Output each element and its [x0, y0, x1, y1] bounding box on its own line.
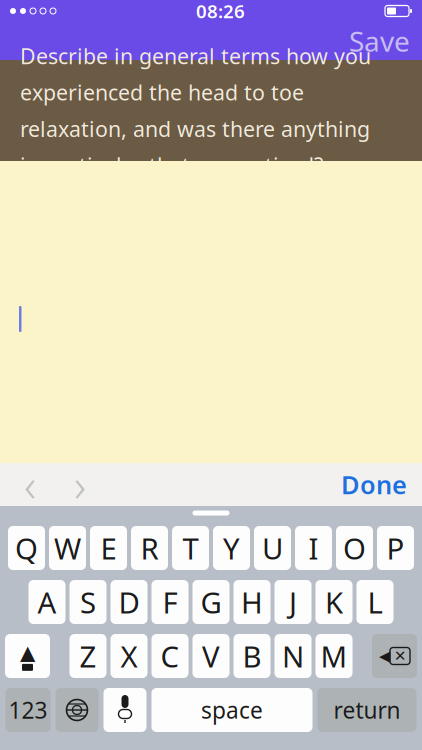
button[interactable]: return	[317, 688, 416, 732]
staticText: R	[140, 528, 158, 567]
button[interactable]: K	[315, 580, 352, 624]
button[interactable]: B	[233, 634, 270, 678]
staticText: Save	[349, 22, 410, 60]
staticText: B	[242, 636, 261, 675]
button[interactable]: M	[315, 634, 352, 678]
button[interactable]: Shift	[5, 634, 50, 678]
button[interactable]: T	[172, 526, 209, 570]
button[interactable]: I	[295, 526, 332, 570]
staticText: J	[289, 582, 297, 621]
staticText: K	[325, 582, 343, 621]
staticText: V	[202, 636, 220, 675]
staticText: G	[200, 582, 221, 621]
button[interactable]: Next keyboard	[55, 688, 98, 732]
button[interactable]: 123	[5, 688, 50, 732]
button[interactable]: L	[356, 580, 393, 624]
staticText: A	[37, 582, 56, 621]
staticText: Z	[79, 636, 96, 675]
button[interactable]: J	[274, 580, 311, 624]
staticText: M	[320, 636, 347, 675]
staticText: Describe in general terms how you experi…	[20, 42, 371, 179]
button[interactable]: Done	[341, 462, 422, 507]
staticText: ▲	[20, 641, 35, 664]
staticText: N	[282, 636, 304, 675]
staticText: ›	[74, 454, 86, 515]
staticText: ‹	[24, 454, 36, 515]
button[interactable]: O	[336, 526, 373, 570]
staticText: ✕	[394, 648, 406, 664]
button[interactable]: F	[151, 580, 188, 624]
staticText: 08:26	[196, 0, 245, 23]
staticText: D	[118, 582, 139, 621]
staticText: 123	[8, 695, 47, 725]
button[interactable]: D	[110, 580, 147, 624]
staticText: C	[160, 636, 179, 675]
button[interactable]: Q	[8, 526, 45, 570]
button[interactable]: Dictate	[103, 688, 146, 732]
button[interactable]: W	[49, 526, 86, 570]
button[interactable]: H	[233, 580, 270, 624]
staticText: ◀	[379, 648, 390, 664]
button[interactable]: Previous field	[8, 464, 52, 504]
staticText: L	[367, 582, 382, 621]
button[interactable]: G	[192, 580, 229, 624]
staticText: X	[120, 636, 137, 675]
staticText: Q	[15, 528, 38, 567]
button[interactable]: Save	[349, 18, 422, 64]
button[interactable]: U	[254, 526, 291, 570]
staticText: O	[343, 528, 366, 567]
button[interactable]: E	[90, 526, 127, 570]
staticText: F	[162, 582, 177, 621]
staticText: T	[182, 528, 198, 567]
button[interactable]: R	[131, 526, 168, 570]
staticText: U	[262, 528, 283, 567]
staticText: E	[100, 528, 116, 567]
button[interactable]: N	[274, 634, 311, 678]
button[interactable]: Delete	[372, 634, 417, 678]
button[interactable]: S	[69, 580, 106, 624]
button[interactable]: V	[192, 634, 229, 678]
staticText: I	[308, 528, 318, 567]
button[interactable]: Y	[213, 526, 250, 570]
button[interactable]: Z	[69, 634, 106, 678]
button[interactable]: P	[377, 526, 414, 570]
staticText: W	[54, 528, 81, 567]
staticText: H	[241, 582, 263, 621]
button[interactable]: C	[151, 634, 188, 678]
button[interactable]: A	[28, 580, 65, 624]
staticText: S	[80, 582, 96, 621]
staticText: space	[201, 695, 263, 725]
button[interactable]: Next field	[58, 464, 102, 504]
staticText: P	[386, 528, 404, 567]
staticText: Done	[341, 468, 407, 501]
staticText: Y	[223, 528, 240, 567]
button[interactable]: X	[110, 634, 147, 678]
button[interactable]: space	[151, 688, 312, 732]
staticText: return	[333, 695, 400, 725]
